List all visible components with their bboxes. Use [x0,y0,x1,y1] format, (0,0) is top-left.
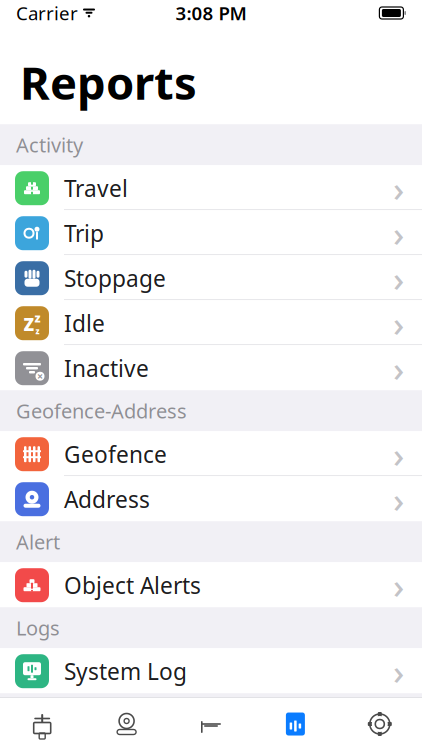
staticText: Travel [64,173,128,203]
button[interactable]: Object Alerts [0,562,422,607]
button[interactable]: Trip [0,210,422,255]
staticText: Object Alerts [64,570,201,600]
staticText: Geofence-Address [16,397,187,424]
staticText: › [393,476,404,522]
button[interactable]: Stoppage [0,255,422,300]
button[interactable]: Places [84,698,169,750]
button[interactable]: System Log [0,648,422,693]
staticText: × [37,369,43,383]
staticText: Geofence [64,439,167,469]
button[interactable]: Address [0,476,422,521]
staticText: Alert [16,528,60,555]
button[interactable]: Settings [338,698,422,750]
staticText: › [393,165,404,211]
button[interactable]: × [0,345,422,390]
staticText: z [35,326,39,336]
button[interactable]: Travel [0,165,422,210]
staticText: › [393,345,404,391]
staticText: Inactive [64,353,149,383]
staticText: Activity [16,131,83,158]
staticText: Reports [20,52,197,112]
button[interactable]: Track [169,698,253,750]
staticText: System Log [64,656,187,686]
button[interactable]: Reports [253,698,338,750]
staticText: › [393,255,404,301]
staticText: › [393,562,404,608]
staticText: z [34,310,40,326]
button[interactable]: Home [0,698,84,750]
staticText: Idle [64,308,105,338]
staticText: › [393,431,404,477]
staticText: Stoppage [64,263,166,293]
staticText: Logs [16,614,60,641]
button[interactable]: Geofence [0,431,422,476]
staticText: Z [23,313,34,336]
staticText: Trip [64,218,104,248]
staticText: Address [64,484,150,514]
staticText: Carrier [16,1,78,25]
staticText: › [393,300,404,346]
staticText: › [393,210,404,256]
button[interactable]: Z [0,300,422,345]
staticText: 3:08 PM [175,1,246,25]
staticText: › [393,648,404,694]
